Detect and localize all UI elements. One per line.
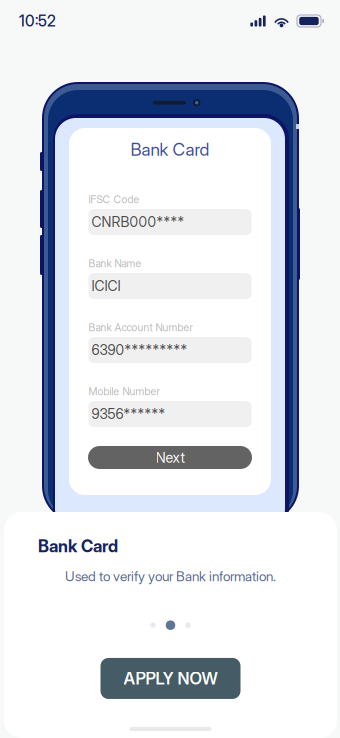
staticText: ICICI — [91, 278, 120, 294]
staticText: Bank Name — [88, 257, 141, 270]
staticText: Bank Card — [38, 536, 118, 556]
staticText: CNRB000**** — [91, 214, 184, 230]
staticText: Bank Card — [130, 139, 209, 160]
staticText: 10:52 — [19, 12, 56, 30]
button[interactable]: APPLY NOW — [100, 658, 240, 699]
staticText: Mobile Number — [88, 385, 159, 398]
staticText: IFSC Code — [88, 193, 139, 206]
staticText: 9356****** — [91, 406, 165, 422]
staticText: APPLY NOW — [123, 668, 217, 689]
staticText: Next — [155, 449, 184, 466]
staticText: Bank Account Number — [88, 321, 192, 334]
button[interactable]: Next — [88, 446, 252, 469]
staticText: Used to verify your Bank information. — [65, 568, 276, 584]
staticText: 6390********* — [91, 342, 187, 358]
